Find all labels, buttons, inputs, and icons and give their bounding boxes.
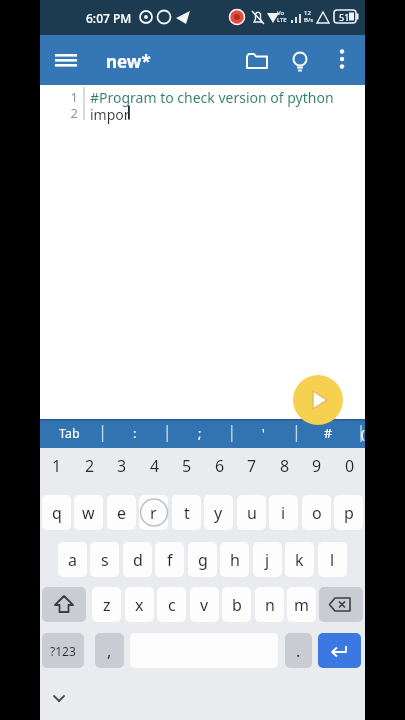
button[interactable]: ;	[169, 419, 230, 448]
button[interactable]: r	[139, 495, 168, 530]
staticText: a	[68, 549, 77, 571]
staticText: b	[232, 594, 242, 616]
staticText: g	[198, 549, 208, 571]
staticText: 51	[339, 11, 350, 23]
button[interactable]: p	[334, 495, 363, 530]
button[interactable]: y	[204, 495, 233, 530]
staticText: o	[312, 502, 322, 524]
button[interactable]: 9	[302, 452, 331, 480]
staticText: x	[135, 594, 144, 616]
button[interactable]: q	[42, 495, 71, 530]
staticText: n	[265, 594, 275, 616]
button[interactable]: d	[123, 542, 152, 577]
staticText: m	[294, 594, 309, 616]
staticText: 12 B/s	[304, 9, 314, 24]
staticText: w	[82, 502, 95, 524]
staticText: 3	[117, 455, 127, 477]
button[interactable]: 4	[140, 452, 169, 480]
staticText: 9	[312, 455, 322, 477]
button[interactable]	[45, 684, 73, 712]
staticText: v	[200, 594, 209, 616]
staticText: t	[184, 502, 190, 524]
staticText: impor	[90, 105, 130, 124]
staticText: r	[150, 502, 157, 524]
staticText: 7	[247, 455, 257, 477]
staticText: z	[103, 594, 111, 616]
button[interactable]: .	[285, 633, 312, 668]
staticText: u	[247, 502, 257, 524]
staticText: f	[167, 549, 173, 571]
button[interactable]: 6	[205, 452, 234, 480]
staticText: 1	[52, 455, 62, 477]
staticText: '	[262, 425, 265, 442]
staticText: .	[296, 640, 301, 662]
button[interactable]: i	[269, 495, 298, 530]
button[interactable]: g	[188, 542, 217, 577]
button[interactable]	[243, 47, 271, 75]
staticText: q	[52, 502, 62, 524]
button[interactable]: w	[74, 495, 103, 530]
button[interactable]: z	[92, 587, 121, 622]
button[interactable]: s	[90, 542, 119, 577]
button[interactable]: b	[222, 587, 251, 622]
staticText: new*	[106, 50, 151, 73]
button[interactable]: 7	[237, 452, 266, 480]
staticText: i	[281, 502, 286, 524]
staticText: #Program to check version of python	[90, 88, 334, 107]
staticText: 1 2	[64, 88, 78, 122]
staticText: y	[214, 502, 223, 524]
staticText: e	[117, 502, 127, 524]
button[interactable]: '	[233, 419, 294, 448]
button[interactable]: f	[155, 542, 184, 577]
staticText: 8	[280, 455, 290, 477]
button[interactable]: 5	[172, 452, 201, 480]
button[interactable]: 3	[107, 452, 136, 480]
button[interactable]	[286, 47, 314, 75]
button[interactable]: j	[253, 542, 282, 577]
button[interactable]: Tab	[39, 419, 100, 448]
button[interactable]	[52, 46, 80, 74]
button[interactable]	[42, 587, 86, 622]
button[interactable]: h	[220, 542, 249, 577]
button[interactable]: m	[287, 587, 316, 622]
staticText: c	[168, 594, 176, 616]
button[interactable]: #	[298, 419, 359, 448]
button[interactable]	[293, 375, 343, 425]
button[interactable]: ,	[95, 633, 124, 668]
button[interactable]: l	[318, 542, 347, 577]
button[interactable]: v	[190, 587, 219, 622]
staticText: Tab	[59, 425, 80, 442]
button[interactable]: :	[104, 419, 165, 448]
button[interactable]: 8	[270, 452, 299, 480]
button[interactable]: n	[255, 587, 284, 622]
staticText: 4	[150, 455, 160, 477]
button[interactable]: 0	[335, 452, 364, 480]
staticText: k	[295, 549, 304, 571]
staticText: d	[133, 549, 143, 571]
staticText: 0	[345, 455, 355, 477]
button[interactable]	[319, 587, 363, 622]
button[interactable]: x	[125, 587, 154, 622]
staticText: #	[324, 425, 333, 442]
staticText: h	[230, 549, 240, 571]
staticText: p	[344, 502, 354, 524]
button[interactable]: ?123	[42, 633, 84, 668]
button[interactable]: o	[302, 495, 331, 530]
button[interactable]	[318, 633, 361, 668]
button[interactable]: 1	[42, 452, 71, 480]
button[interactable]: t	[172, 495, 201, 530]
staticText: ;	[198, 425, 202, 442]
button[interactable]: 2	[75, 452, 104, 480]
button[interactable]: c	[157, 587, 186, 622]
button[interactable]: a	[58, 542, 87, 577]
staticText: 6:07 PM	[86, 10, 132, 26]
button[interactable]	[329, 46, 355, 72]
staticText: 2	[85, 455, 95, 477]
button[interactable]: k	[285, 542, 314, 577]
staticText: (	[361, 426, 365, 443]
button[interactable]: e	[107, 495, 136, 530]
button[interactable]: u	[237, 495, 266, 530]
staticText: ?123	[50, 643, 76, 659]
staticText: 5	[182, 455, 192, 477]
